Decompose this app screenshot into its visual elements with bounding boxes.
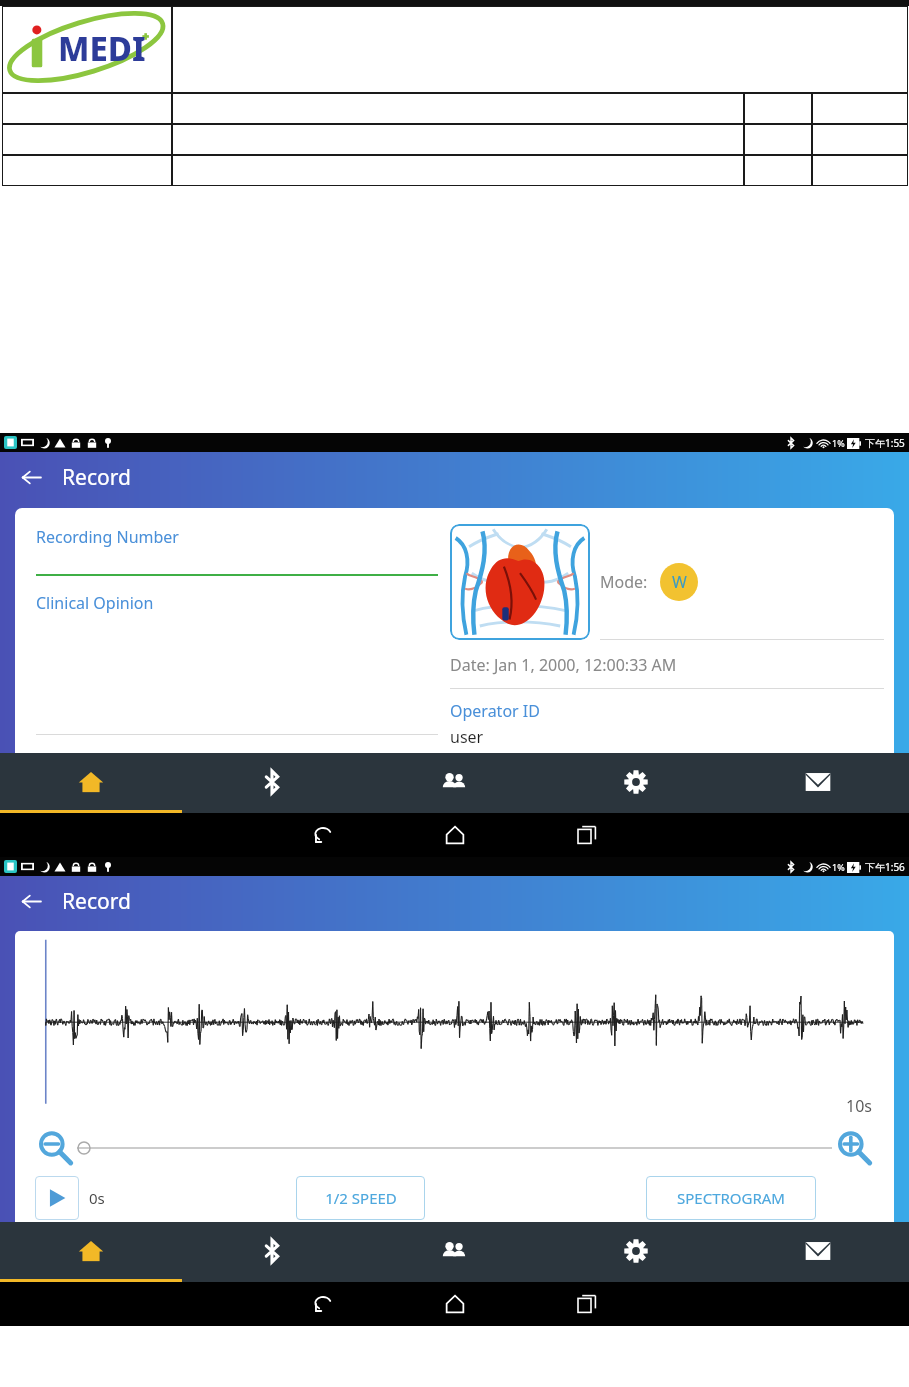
button[interactable]: Recents [565, 1282, 609, 1326]
staticText: W [672, 571, 687, 593]
staticText: Clinical Opinion [36, 592, 154, 614]
staticText: 10s [846, 1095, 872, 1117]
button[interactable]: Play [35, 1176, 79, 1220]
button[interactable]: Back [301, 813, 345, 857]
staticText: SPECTROGRAM [677, 1188, 785, 1208]
button[interactable]: Contacts [363, 1222, 545, 1279]
staticText: 1% [832, 437, 845, 449]
staticText: Operator ID [450, 700, 540, 722]
staticText: Record [62, 887, 131, 916]
button[interactable]: Settings [545, 1222, 727, 1279]
button[interactable]: Bluetooth [181, 1222, 363, 1279]
staticText: Record [62, 463, 131, 492]
button[interactable]: Home [433, 1282, 477, 1326]
button[interactable]: Zoom out [33, 1126, 77, 1170]
button[interactable]: Bluetooth [181, 753, 363, 810]
button[interactable]: Home [0, 753, 181, 810]
button[interactable]: SPECTROGRAM [646, 1176, 816, 1220]
button[interactable]: Back [14, 460, 48, 494]
staticText: Mode: [600, 571, 648, 593]
button[interactable]: Zoom in [832, 1126, 876, 1170]
button[interactable]: Back [14, 884, 48, 918]
button[interactable]: Back [301, 1282, 345, 1326]
staticText: 1% [832, 861, 845, 873]
button[interactable]: Settings [545, 753, 727, 810]
button[interactable]: Contacts [363, 753, 545, 810]
staticText: Date: Jan 1, 2000, 12:00:33 AM [450, 654, 677, 676]
button[interactable]: W [660, 563, 698, 601]
button[interactable]: Auscultation position [450, 524, 590, 640]
staticText: 0s [89, 1188, 105, 1208]
button[interactable]: 1/2 SPEED [296, 1176, 425, 1220]
button[interactable]: Recents [565, 813, 609, 857]
staticText: user [450, 726, 484, 748]
button[interactable]: Messages [727, 1222, 909, 1279]
button[interactable]: Home [0, 1222, 181, 1279]
staticText: 1/2 SPEED [325, 1188, 397, 1208]
staticText: 下午1:55 [865, 436, 905, 450]
button[interactable]: Messages [727, 753, 909, 810]
staticText: MEDI [58, 26, 146, 71]
staticText: Recording Number [36, 526, 179, 548]
button[interactable]: Home [433, 813, 477, 857]
staticText: 下午1:56 [865, 860, 905, 874]
